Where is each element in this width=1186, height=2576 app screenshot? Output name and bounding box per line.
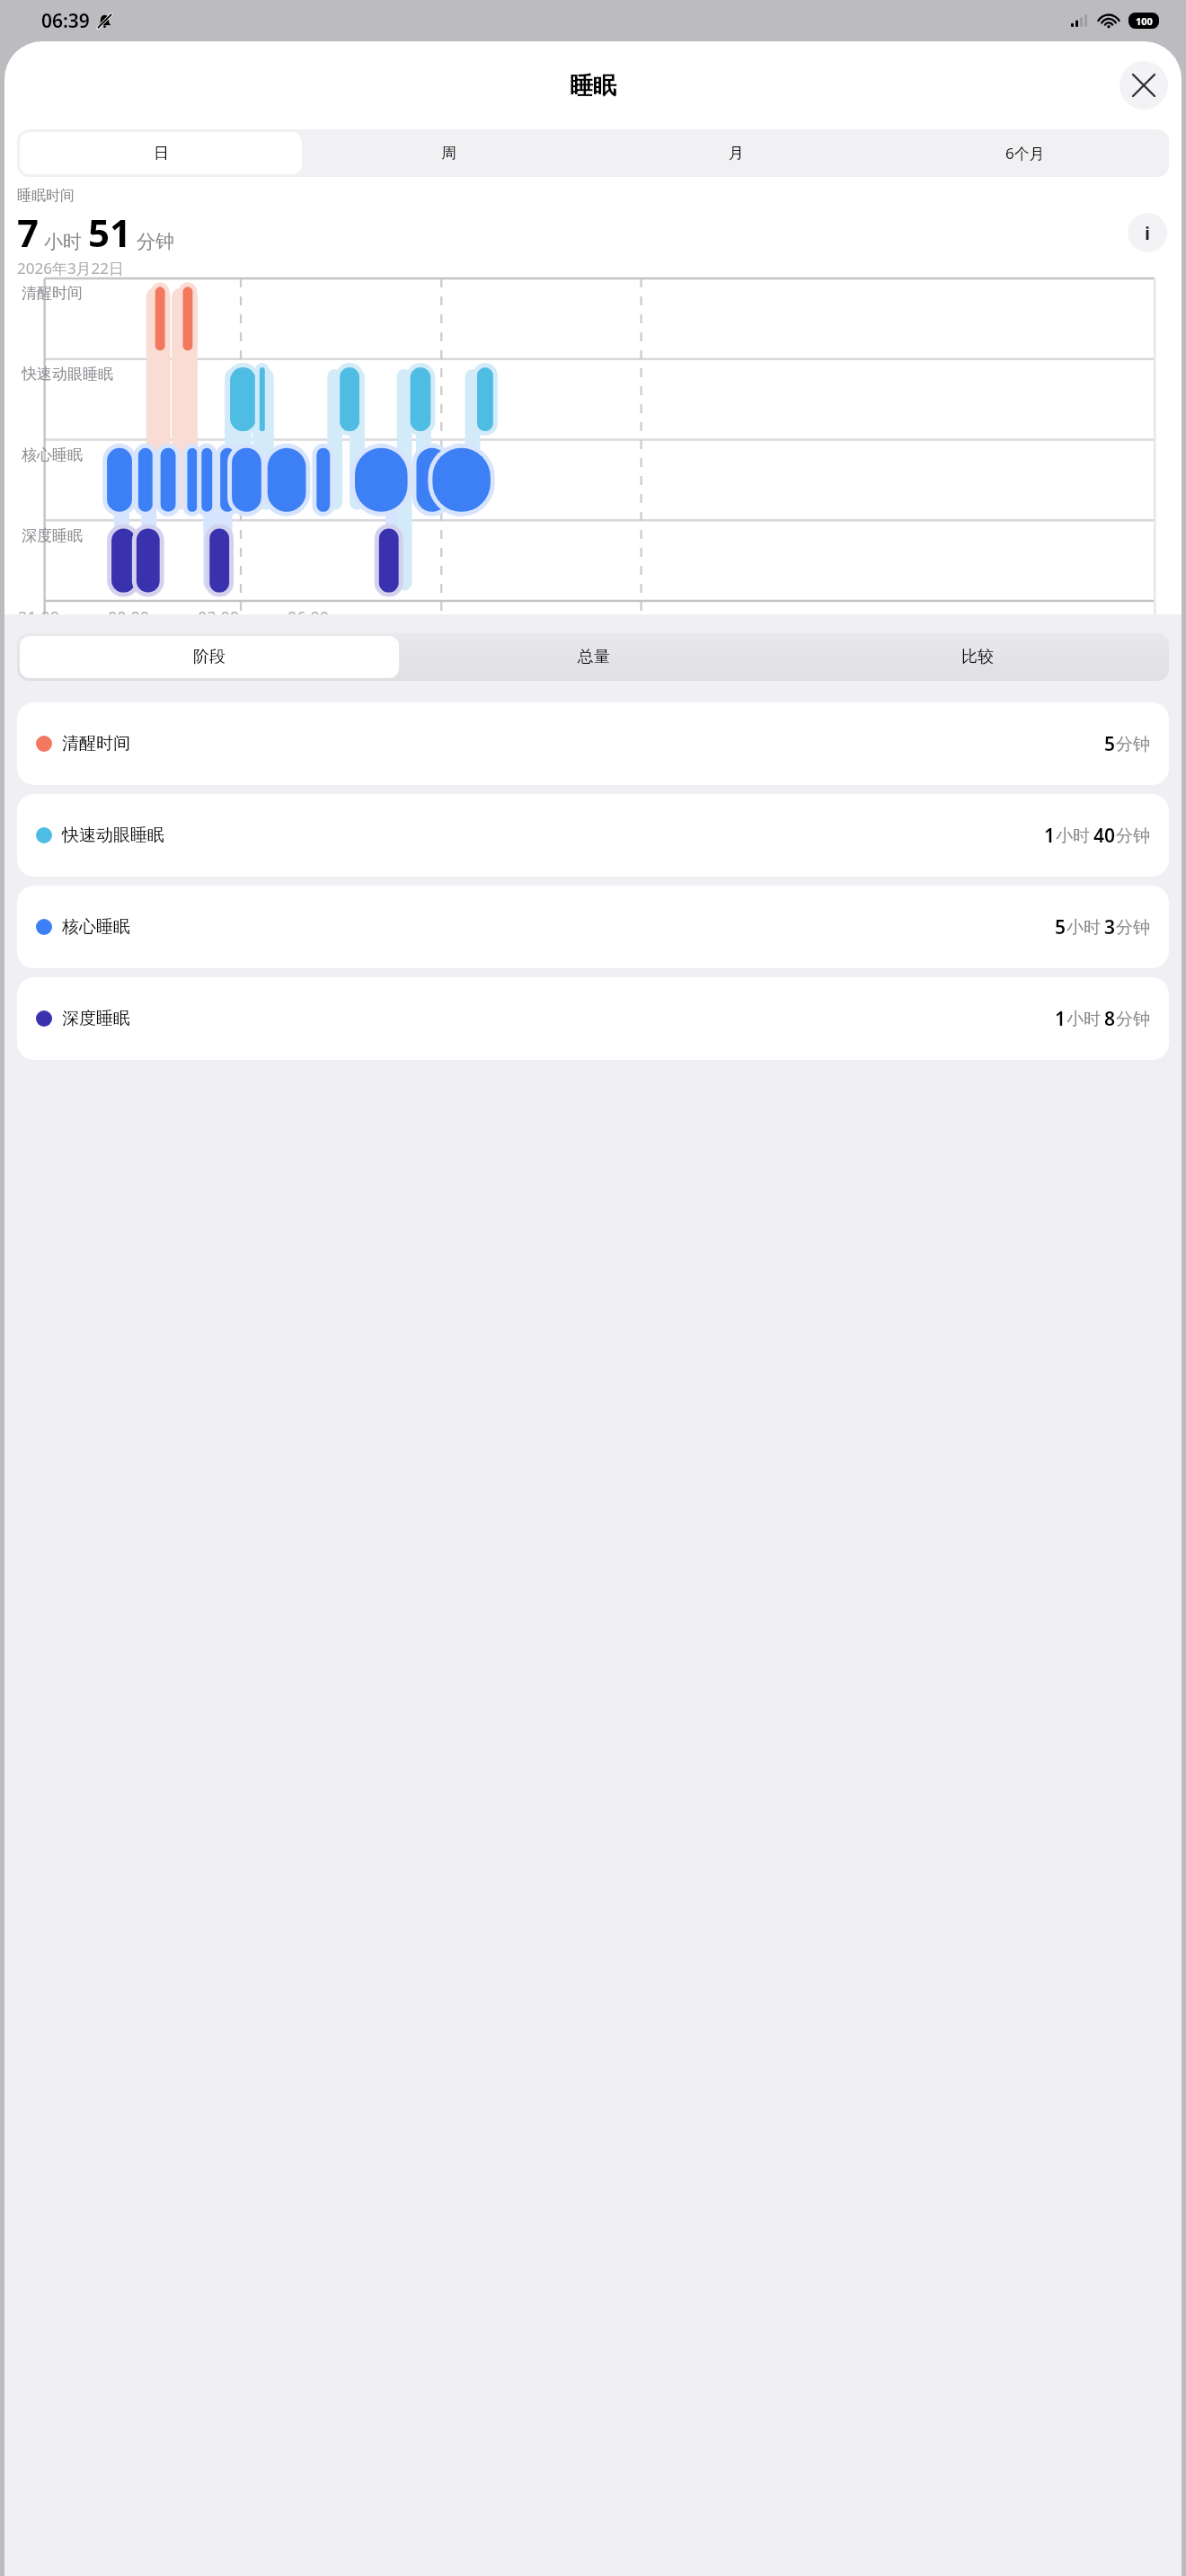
staticText: 1	[1044, 823, 1056, 849]
staticText: 06:00	[288, 606, 330, 614]
staticText: 快速动眼睡眠	[22, 365, 113, 384]
staticText: 21:00	[18, 606, 60, 614]
button[interactable]: 周	[307, 132, 589, 174]
staticText: 睡眠时间	[17, 187, 75, 205]
button[interactable]: 比较	[788, 636, 1166, 678]
staticText: 51	[88, 207, 132, 258]
staticText: 8	[1104, 1006, 1116, 1032]
staticText: 100	[1136, 14, 1153, 28]
button[interactable]: 6个月	[883, 132, 1166, 174]
staticText: 3	[1104, 914, 1116, 940]
staticText: 清醒时间	[22, 284, 83, 303]
staticText: 小时	[1067, 917, 1101, 939]
button[interactable]: 清醒时间	[17, 702, 1169, 785]
button[interactable]: 月	[595, 132, 878, 174]
staticText: 分钟	[1116, 1009, 1150, 1030]
staticText: 睡眠	[570, 71, 616, 101]
staticText: 小时	[1067, 1009, 1101, 1030]
staticText: 小时	[44, 230, 82, 253]
staticText: 分钟	[1116, 917, 1150, 939]
staticText: 阶段	[193, 647, 226, 667]
button[interactable]: 阶段	[20, 636, 399, 678]
staticText: 清醒时间	[62, 733, 130, 754]
staticText: 核心睡眠	[22, 446, 83, 464]
staticText: 5	[1055, 914, 1067, 940]
staticText: 分钟	[137, 230, 174, 253]
staticText: 00:00	[108, 606, 150, 614]
staticText: 比较	[961, 647, 994, 667]
staticText: 5	[1104, 731, 1116, 757]
button[interactable]: 关闭	[1120, 61, 1168, 110]
staticText: 周	[441, 144, 456, 163]
button[interactable]: 总量	[404, 636, 783, 678]
staticText: 总量	[578, 647, 610, 667]
staticText: 月	[729, 144, 744, 163]
staticText: 核心睡眠	[62, 916, 130, 938]
button[interactable]: 信息	[1128, 213, 1167, 252]
staticText: 06:39	[41, 8, 90, 34]
staticText: 1	[1055, 1006, 1067, 1032]
staticText: 快速动眼睡眠	[62, 825, 164, 846]
button[interactable]: 核心睡眠	[17, 886, 1169, 968]
staticText: 2026年3月22日	[17, 258, 125, 278]
staticText: 分钟	[1116, 734, 1150, 755]
staticText: 分钟	[1116, 825, 1150, 847]
staticText: 40	[1093, 823, 1116, 849]
staticText: 6个月	[1005, 143, 1045, 163]
staticText: 小时	[1056, 825, 1090, 847]
staticText: 7	[17, 207, 40, 258]
staticText: 深度睡眠	[22, 526, 83, 545]
staticText: 日	[154, 144, 169, 163]
staticText: 深度睡眠	[62, 1008, 130, 1029]
staticText: i	[1145, 221, 1150, 245]
button[interactable]: 快速动眼睡眠	[17, 794, 1169, 877]
button[interactable]: 深度睡眠	[17, 977, 1169, 1060]
staticText: 03:00	[198, 606, 240, 614]
button[interactable]: 日	[20, 132, 302, 174]
